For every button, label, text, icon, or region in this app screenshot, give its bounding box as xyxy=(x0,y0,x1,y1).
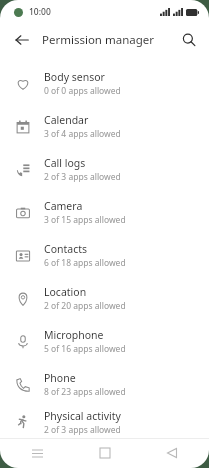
button[interactable]: Physical activity xyxy=(0,406,209,438)
staticText: 3 of 4 apps allowed xyxy=(44,128,121,140)
button[interactable]: Phone xyxy=(0,363,209,406)
button[interactable]: Body sensor xyxy=(0,62,209,105)
staticText: 5 of 16 apps allowed xyxy=(44,343,126,355)
staticText: 10:00 xyxy=(29,6,51,18)
staticText: Body sensor xyxy=(44,70,105,84)
button[interactable]: Back xyxy=(8,26,36,54)
button[interactable]: Search xyxy=(175,26,203,54)
staticText: 2 of 20 apps allowed xyxy=(44,300,126,312)
button[interactable]: Call logs xyxy=(0,148,209,191)
staticText: 0 of 0 apps allowed xyxy=(44,85,121,97)
staticText: 2 of 3 apps allowed xyxy=(44,171,121,183)
staticText: Location xyxy=(44,285,87,299)
staticText: 2 of 3 apps allowed xyxy=(44,424,121,436)
staticText: Permission manager xyxy=(42,32,155,48)
button[interactable]: Camera xyxy=(0,191,209,234)
button[interactable]: Back xyxy=(157,438,187,468)
staticText: Contacts xyxy=(44,242,88,256)
button[interactable]: Contacts xyxy=(0,234,209,277)
staticText: 6 of 18 apps allowed xyxy=(44,257,126,269)
button[interactable]: Recents xyxy=(22,438,52,468)
staticText: Microphone xyxy=(44,328,104,342)
staticText: 8 of 23 apps allowed xyxy=(44,386,126,398)
button[interactable]: Location xyxy=(0,277,209,320)
staticText: Call logs xyxy=(44,156,86,170)
staticText: Phone xyxy=(44,371,76,385)
staticText: Camera xyxy=(44,199,83,213)
staticText: Calendar xyxy=(44,113,89,127)
button[interactable]: Calendar xyxy=(0,105,209,148)
staticText: 3 of 15 apps allowed xyxy=(44,214,126,226)
staticText: Physical activity xyxy=(44,409,121,423)
button[interactable]: Home xyxy=(90,438,120,468)
button[interactable]: Microphone xyxy=(0,320,209,363)
